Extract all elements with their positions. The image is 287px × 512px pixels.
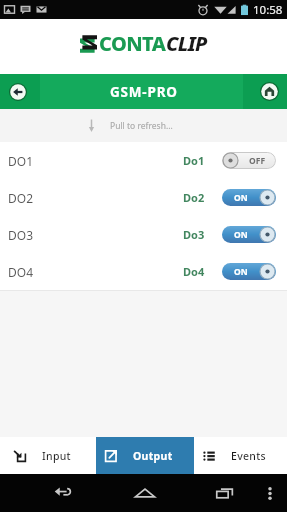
- button[interactable]: DO1: [0, 142, 287, 179]
- button[interactable]: Output: [96, 437, 194, 474]
- staticText: 10:58: [253, 2, 283, 18]
- staticText: Do4: [183, 264, 205, 279]
- button[interactable]: Switch on: [222, 263, 276, 280]
- button[interactable]: Switch off: [222, 152, 276, 169]
- button[interactable]: DO4: [0, 253, 287, 290]
- staticText: GSM-PRO: [110, 83, 178, 101]
- staticText: Output: [133, 449, 173, 463]
- button[interactable]: Switch on: [222, 189, 276, 206]
- staticText: Input: [42, 449, 71, 463]
- staticText: CLIP: [166, 30, 207, 57]
- staticText: DO2: [8, 190, 33, 206]
- staticText: Do3: [183, 227, 205, 242]
- staticText: ON: [234, 192, 248, 204]
- staticText: ON: [234, 229, 248, 241]
- button[interactable]: Input: [0, 437, 96, 474]
- staticText: CONTA: [99, 30, 166, 57]
- button[interactable]: Events: [194, 437, 287, 474]
- staticText: Do2: [183, 190, 205, 205]
- button[interactable]: Home: [125, 474, 165, 512]
- staticText: Pull to refresh...: [110, 120, 173, 132]
- button[interactable]: DO3: [0, 216, 287, 253]
- button[interactable]: Back: [0, 74, 36, 109]
- staticText: Do1: [183, 153, 205, 168]
- staticText: ON: [234, 266, 248, 278]
- button[interactable]: Home: [251, 74, 287, 109]
- staticText: DO4: [8, 264, 33, 280]
- staticText: DO3: [8, 227, 33, 243]
- button[interactable]: Recents: [205, 474, 245, 512]
- staticText: Events: [231, 449, 266, 463]
- button[interactable]: DO2: [0, 179, 287, 216]
- staticText: DO1: [8, 153, 33, 169]
- button[interactable]: Back: [43, 474, 83, 512]
- button[interactable]: Switch on: [222, 226, 276, 243]
- button[interactable]: More options: [255, 478, 285, 508]
- staticText: OFF: [249, 155, 266, 167]
